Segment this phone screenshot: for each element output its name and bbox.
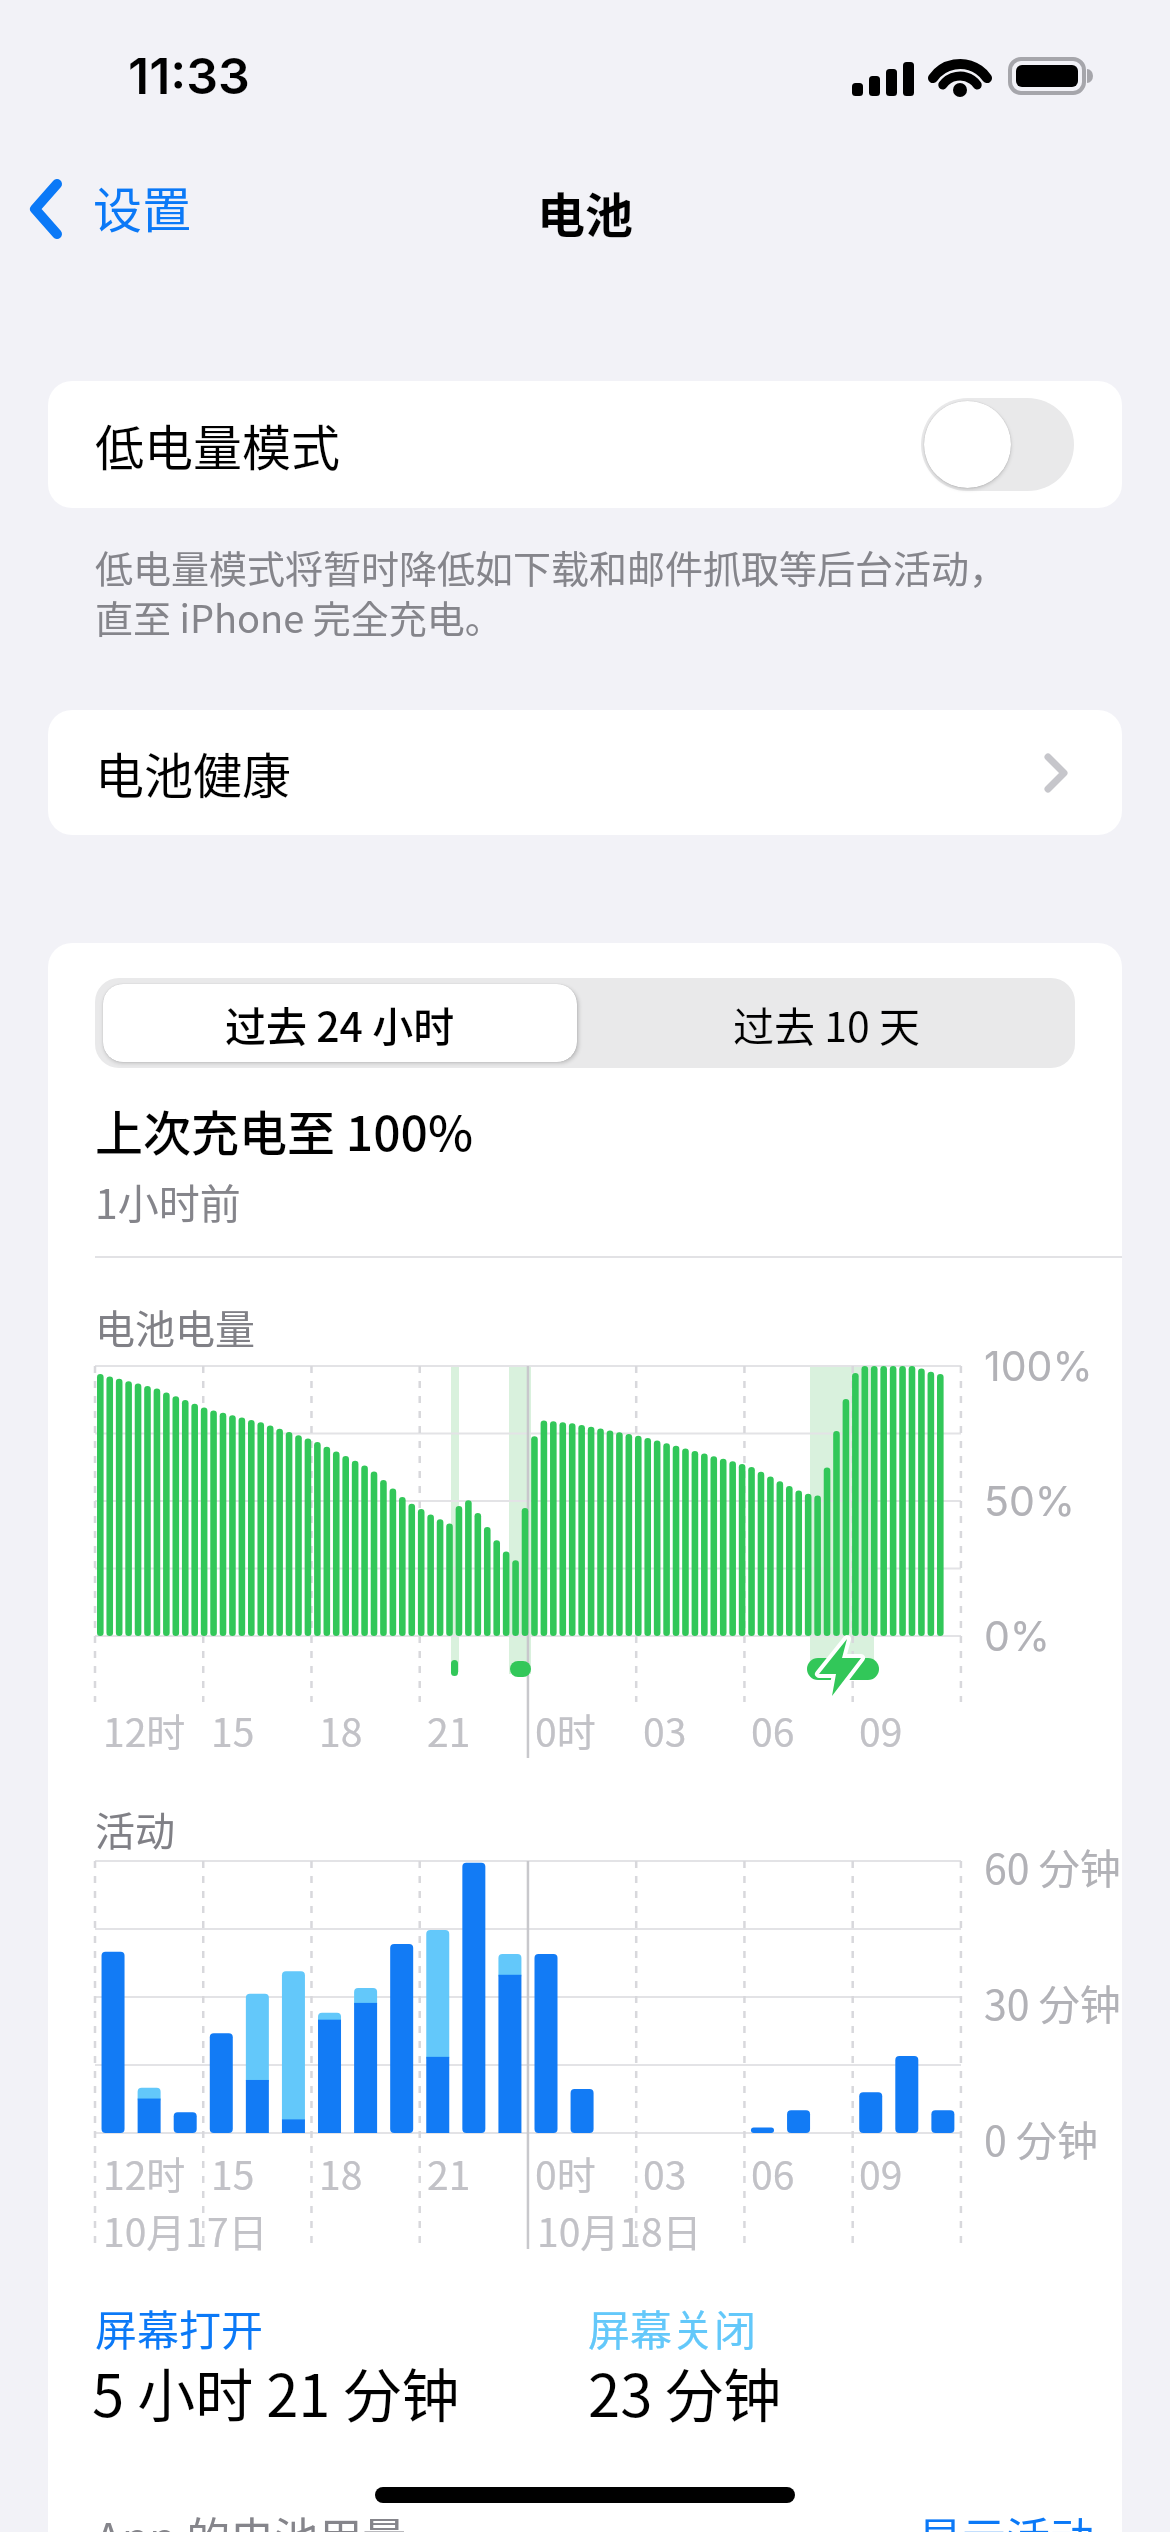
staticText: 18 [319, 2145, 363, 2201]
staticText: 活动 [95, 1800, 175, 1858]
staticText: 屏幕关闭 [588, 2297, 757, 2358]
staticText: 0 分钟 [984, 2108, 1098, 2167]
staticText: 21 [427, 2145, 471, 2201]
staticText: 06 [751, 1702, 795, 1758]
staticText: 上次充电至 100% [95, 1095, 473, 1165]
staticText: 电池健康 [95, 737, 292, 808]
staticText: 15 [211, 1702, 255, 1758]
staticText: 09 [859, 1702, 903, 1758]
staticText: 11:33 [128, 46, 250, 106]
staticText: 09 [859, 2145, 903, 2201]
staticText: 电池电量 [95, 1298, 255, 1356]
staticText: 10月18日 [537, 2202, 702, 2258]
staticText: 0时 [535, 1702, 596, 1758]
staticText: 显示活动 [918, 2504, 1094, 2532]
button[interactable]: 设置 [20, 175, 220, 245]
staticText: 屏幕打开 [95, 2297, 264, 2358]
button[interactable]: 电池健康 [48, 710, 1122, 835]
staticText: 低电量模式将暂时降低如下载和邮件抓取等后台活动， 直至 iPhone 完全充电。 [95, 539, 1008, 644]
staticText: 21 [427, 1702, 471, 1758]
staticText: 0% [984, 1611, 1051, 1661]
staticText: 03 [643, 2145, 687, 2201]
staticText: 100% [984, 1341, 1093, 1391]
staticText: 1小时前 [95, 1171, 241, 1230]
staticText: 06 [751, 2145, 795, 2201]
button[interactable]: 显示活动 [905, 2496, 1105, 2532]
button[interactable] [103, 984, 577, 1062]
button[interactable]: 过去 24 小时 [103, 978, 577, 1068]
staticText: 23 分钟 [588, 2350, 782, 2434]
staticText: 15 [211, 2145, 255, 2201]
staticText: 12时 [103, 1702, 186, 1758]
staticText: 10月17日 [103, 2202, 268, 2258]
staticText: 低电量模式 [95, 409, 341, 480]
staticText: 5 小时 21 分钟 [92, 2350, 460, 2434]
staticText: App 的电池用量 [95, 2504, 407, 2532]
staticText: 过去 24 小时 [225, 994, 455, 1053]
staticText: 30 分钟 [984, 1972, 1121, 2031]
staticText: 50% [984, 1476, 1076, 1526]
button[interactable]: 低电量模式 [48, 381, 1122, 508]
staticText: 60 分钟 [984, 1836, 1121, 1895]
button[interactable]: 过去 10 天 [585, 978, 1067, 1068]
staticText: 18 [319, 1702, 363, 1758]
staticText: 03 [643, 1702, 687, 1758]
staticText: 过去 10 天 [733, 994, 920, 1053]
staticText: 0时 [535, 2145, 596, 2201]
staticText: 12时 [103, 2145, 186, 2201]
staticText: 设置 [93, 171, 192, 241]
staticText: 电池 [537, 177, 634, 241]
